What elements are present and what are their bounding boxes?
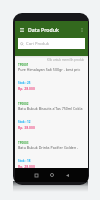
staticText: TP0003 [18,141,29,145]
staticText: TP0002 [18,102,29,106]
staticText: Klik untuk memilih produk [47,58,85,62]
staticText: Batu Bubuk Biscuits a'Tas 750ml Cokla [18,106,83,111]
staticText: Data Produk [28,26,59,33]
staticText: Rp. 38.000 [18,125,35,130]
staticText: Pure Himalayan Salt 500gr - best pric [18,67,81,72]
staticText: Stok : 12 [18,120,31,124]
button[interactable]: More options [77,25,86,34]
button[interactable]: Home [48,171,56,179]
staticText: TP0001 [18,63,29,67]
button[interactable]: Menu [17,25,26,34]
button[interactable]: Cari Produk [18,38,85,49]
button[interactable]: Recents [32,171,40,179]
button[interactable]: TP0003 [15,140,88,168]
button[interactable]: TP0001 [15,62,88,101]
button[interactable]: Back [63,171,71,179]
staticText: Stok : 18 [18,159,31,163]
staticText: Rp. 28.000 [18,86,35,91]
staticText: Rp. 28.000 [18,164,35,168]
staticText: Stok : 25 [18,81,31,85]
button[interactable]: TP0002 [15,101,88,140]
staticText: Cari Produk [26,41,50,47]
staticText: Batu Bubuk Drinks Pacifier Golden - Blue [18,145,85,150]
